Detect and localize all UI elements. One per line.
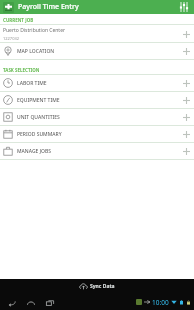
staticText: EQUIPMENT TIME (17, 97, 60, 104)
button[interactable]: UNIT QUANTITIES (0, 109, 194, 126)
button[interactable]: LABOR TIME (0, 75, 194, 92)
button[interactable]: Puerto Distribution Center (0, 25, 194, 43)
staticText: MANAGE JOBS (17, 148, 52, 155)
staticText: Payroll Time Entry (18, 2, 79, 12)
button[interactable]: Back (5, 296, 18, 309)
staticText: 10:00 (152, 298, 169, 307)
button[interactable]: MANAGE JOBS (0, 143, 194, 160)
staticText: CURRENT JOB (3, 17, 34, 23)
button[interactable]: MAP LOCATION (0, 43, 194, 60)
staticText: TASK SELECTION (3, 67, 40, 73)
button[interactable]: EQUIPMENT TIME (0, 92, 194, 109)
button[interactable]: Recent apps (43, 296, 56, 309)
button[interactable]: Home (24, 296, 37, 309)
button[interactable]: Sync Data (75, 280, 119, 293)
staticText: PERIOD SUMMARY (17, 131, 62, 138)
button[interactable]: PERIOD SUMMARY (0, 126, 194, 143)
staticText: Puerto Distribution Center (3, 27, 66, 34)
staticText: UNIT QUANTITIES (17, 114, 60, 121)
staticText: LABOR TIME (17, 80, 47, 87)
button[interactable]: Settings (177, 0, 191, 14)
staticText: 1227032 (3, 36, 20, 41)
button[interactable]: App icon (3, 2, 14, 13)
staticText: Sync Data (90, 283, 115, 290)
staticText: MAP LOCATION (17, 48, 55, 55)
